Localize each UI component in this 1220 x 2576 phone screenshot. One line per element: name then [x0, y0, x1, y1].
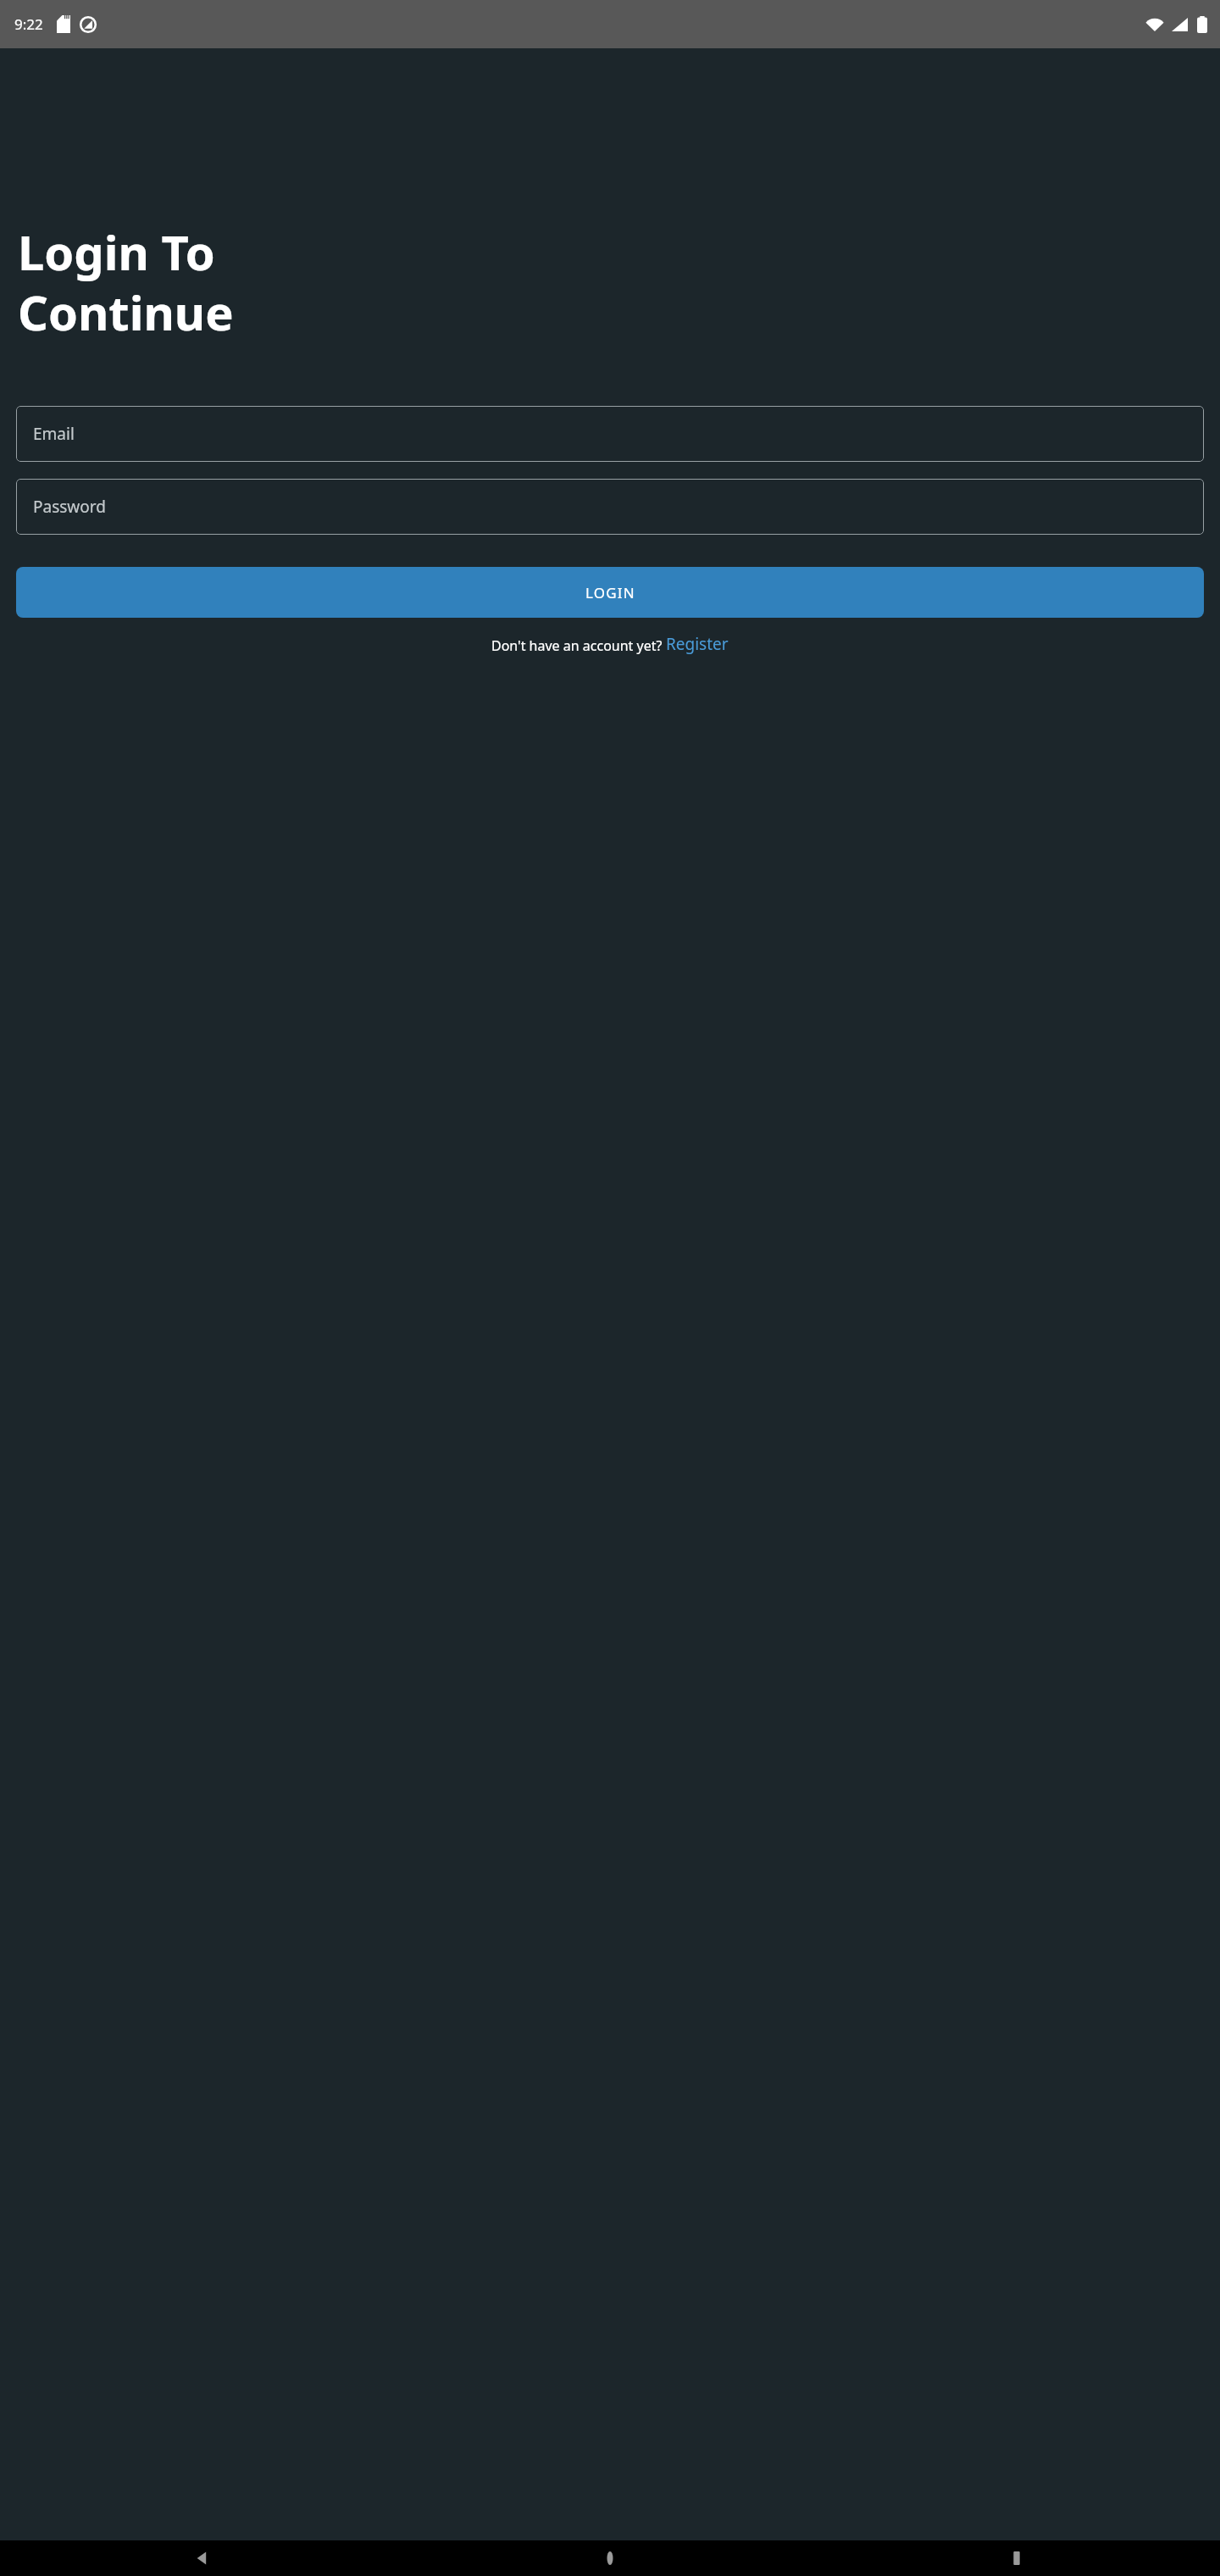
button[interactable]: LOGIN [16, 567, 1204, 618]
button[interactable]: Home [407, 2540, 813, 2576]
staticText: LOGIN [585, 583, 635, 602]
staticText: Password [33, 496, 106, 518]
staticText: Register [666, 633, 729, 655]
staticText: Don't have an account yet? [491, 636, 666, 655]
staticText: Email [33, 423, 75, 445]
button[interactable]: Recent apps [813, 2540, 1220, 2576]
button[interactable]: Password [16, 479, 1204, 535]
button[interactable]: Email [16, 406, 1204, 462]
button[interactable]: Back [0, 2540, 407, 2576]
staticText: Login To Continue [18, 219, 234, 344]
staticText: 9:22 [14, 14, 43, 34]
button[interactable]: Register [666, 633, 729, 655]
